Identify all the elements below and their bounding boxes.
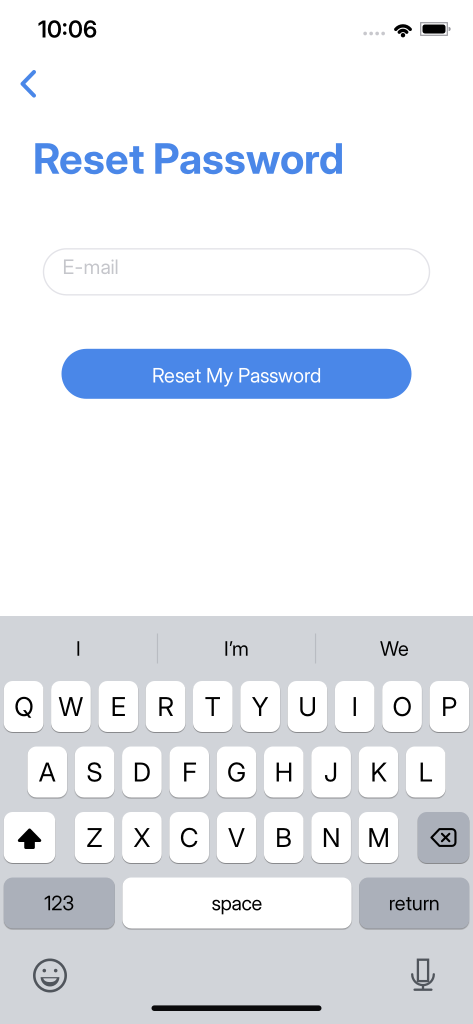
staticText: I [352,691,358,722]
staticText: V [228,822,245,853]
button[interactable]: R [146,681,185,732]
staticText: G [227,756,246,788]
staticText: J [324,756,338,788]
button[interactable]: return [359,877,469,928]
staticText: 10:06 [38,15,97,43]
staticText: X [133,822,150,853]
button[interactable]: I’m [158,616,315,681]
button[interactable]: P [429,681,469,732]
staticText: K [370,756,386,788]
staticText: U [298,691,316,722]
button[interactable]: I [0,616,157,681]
staticText: A [39,756,56,788]
staticText: E [111,691,126,722]
button[interactable]: B [264,812,304,863]
staticText: I [76,636,81,661]
staticText: D [133,756,151,788]
staticText: return [389,891,440,915]
button[interactable]: M [359,812,398,863]
button[interactable]: C [169,812,209,863]
button[interactable]: 123 [4,877,115,928]
staticText: space [211,891,262,915]
button[interactable]: Delete [418,812,469,863]
staticText: M [367,822,389,853]
button[interactable]: Y [240,681,280,732]
button[interactable]: E-mail [43,249,429,295]
staticText: P [441,691,457,722]
button[interactable]: U [288,681,327,732]
staticText: I’m [224,636,249,661]
button[interactable]: L [406,746,446,797]
button[interactable]: O [382,681,422,732]
staticText: E-mail [62,255,118,279]
button[interactable]: space [122,877,352,928]
staticText: T [205,691,221,722]
button[interactable]: Reset My Password [61,349,411,399]
button[interactable]: Back [20,70,36,98]
staticText: Y [252,691,269,722]
button[interactable]: S [75,746,114,797]
staticText: 123 [44,891,74,915]
button[interactable]: K [359,746,398,797]
staticText: O [393,691,412,722]
staticText: F [182,756,196,788]
button[interactable]: E [98,681,138,732]
staticText: L [419,756,433,788]
button[interactable]: Shift [4,812,55,863]
button[interactable]: V [217,812,256,863]
staticText: N [322,822,340,853]
button[interactable]: Z [75,812,114,863]
button[interactable]: T [193,681,233,732]
button[interactable]: A [27,746,67,797]
button[interactable]: Q [4,681,43,732]
button[interactable]: H [264,746,304,797]
staticText: Reset Password [33,133,344,184]
staticText: Reset My Password [152,363,321,387]
button[interactable]: J [311,746,351,797]
staticText: Q [14,691,33,722]
button[interactable]: N [311,812,351,863]
staticText: R [158,691,174,722]
staticText: W [58,691,83,722]
button[interactable]: X [122,812,162,863]
staticText: Z [87,822,103,853]
staticText: H [275,756,293,788]
staticText: B [275,822,292,853]
staticText: We [380,636,409,661]
button[interactable]: Dictation [411,958,435,992]
button[interactable]: I [335,681,375,732]
button[interactable]: We [316,616,473,681]
button[interactable]: D [122,746,162,797]
button[interactable]: G [217,746,256,797]
staticText: C [180,822,199,853]
button[interactable]: Emoji [33,958,67,992]
staticText: S [87,756,103,788]
button[interactable]: F [169,746,209,797]
button[interactable]: W [51,681,91,732]
